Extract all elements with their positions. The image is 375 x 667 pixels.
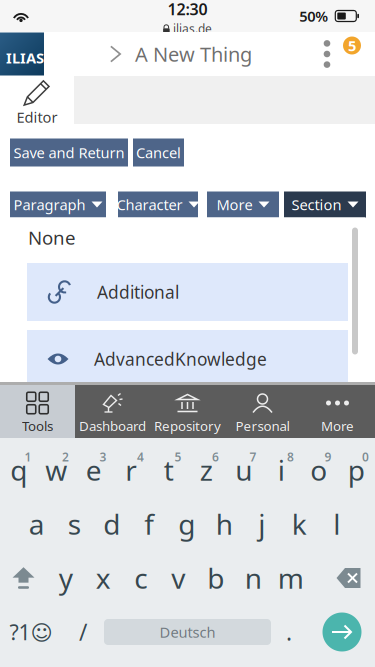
staticText: Section	[291, 195, 341, 214]
button[interactable]: Repository	[150, 385, 225, 438]
button[interactable]: v	[159, 551, 197, 605]
staticText: ilias.de	[173, 21, 212, 37]
staticText: /	[79, 617, 87, 647]
staticText: n	[245, 559, 262, 597]
button[interactable]: Save and Return	[10, 138, 128, 166]
button[interactable]: d	[93, 497, 130, 551]
button[interactable]: f	[130, 497, 168, 551]
staticText: 50%	[299, 6, 328, 26]
button[interactable]: .	[271, 605, 307, 659]
button[interactable]: Backspace	[323, 551, 375, 605]
staticText: Editor	[16, 107, 57, 127]
staticText: Character	[116, 195, 182, 214]
button[interactable]: /	[62, 605, 104, 659]
button[interactable]: j	[243, 497, 280, 551]
button[interactable]: More	[300, 385, 375, 438]
button[interactable]: Additional	[27, 263, 348, 321]
staticText: h	[216, 505, 233, 543]
staticText: 8	[287, 449, 294, 465]
staticText: A New Thing	[135, 41, 252, 67]
staticText: g	[178, 505, 195, 543]
button[interactable]: 5	[150, 443, 187, 497]
button[interactable]: 8	[262, 443, 300, 497]
button[interactable]: 5 notifications	[338, 32, 366, 76]
staticText: Additional	[97, 280, 179, 303]
staticText: Tools	[22, 417, 53, 435]
button[interactable]: Space	[104, 605, 271, 659]
staticText: w	[45, 451, 67, 489]
staticText: u	[235, 451, 252, 489]
button[interactable]: More	[207, 191, 279, 217]
staticText: l	[333, 505, 340, 543]
staticText: 9	[324, 449, 331, 465]
button[interactable]: Symbols and emoji	[0, 605, 62, 659]
button[interactable]: AdvancedKnowledge	[27, 330, 348, 388]
button[interactable]: k	[280, 497, 318, 551]
button[interactable]: 1	[0, 443, 37, 497]
button[interactable]: c	[122, 551, 159, 605]
button[interactable]: Shift	[0, 551, 47, 605]
button[interactable]: 6	[187, 443, 225, 497]
staticText: Cancel	[136, 143, 181, 162]
button[interactable]: 2	[37, 443, 75, 497]
button[interactable]: s	[55, 497, 93, 551]
button[interactable]: Character	[118, 191, 198, 217]
staticText: p	[348, 451, 365, 489]
button[interactable]: m	[272, 551, 309, 605]
staticText: m	[278, 559, 304, 597]
button[interactable]: 9	[300, 443, 337, 497]
staticText: y	[59, 559, 73, 597]
staticText: ?1☺	[9, 618, 52, 646]
button[interactable]: Cancel	[133, 138, 184, 166]
button[interactable]: Section	[284, 191, 366, 217]
staticText: Repository	[154, 417, 221, 435]
staticText: r	[125, 451, 137, 489]
button[interactable]: g	[168, 497, 205, 551]
staticText: q	[10, 451, 27, 489]
button[interactable]: b	[197, 551, 234, 605]
button[interactable]: ILIAS home	[0, 32, 44, 75]
staticText: 0	[362, 449, 369, 465]
button[interactable]: Dashboard	[75, 385, 150, 438]
button[interactable]: Personal	[225, 385, 300, 438]
staticText: d	[103, 505, 120, 543]
staticText: c	[134, 559, 147, 597]
button[interactable]: l	[318, 497, 355, 551]
staticText: v	[171, 559, 185, 597]
staticText: a	[29, 505, 45, 543]
staticText: 2	[62, 449, 69, 465]
button[interactable]: Editor	[0, 76, 74, 124]
staticText: More	[216, 195, 252, 214]
staticText: .	[286, 617, 292, 647]
staticText: t	[164, 451, 174, 489]
button[interactable]: Paragraph	[10, 191, 106, 217]
staticText: 5	[174, 449, 181, 465]
staticText: ILIAS	[6, 48, 44, 67]
staticText: z	[200, 451, 213, 489]
button[interactable]: 3	[75, 443, 112, 497]
button[interactable]: h	[205, 497, 243, 551]
staticText: 6	[212, 449, 219, 465]
button[interactable]: 4	[112, 443, 150, 497]
staticText: AdvancedKnowledge	[94, 347, 267, 370]
button[interactable]: y	[47, 551, 84, 605]
button[interactable]: x	[84, 551, 122, 605]
button[interactable]: a	[18, 497, 55, 551]
staticText: 5	[348, 36, 356, 55]
staticText: x	[96, 559, 111, 597]
staticText: 3	[99, 449, 106, 465]
button[interactable]: Enter	[315, 605, 369, 659]
staticText: j	[258, 505, 265, 543]
button[interactable]: More options	[316, 32, 338, 76]
staticText: More	[321, 417, 354, 435]
staticText: Personal	[235, 417, 289, 435]
button[interactable]: n	[234, 551, 272, 605]
staticText: 7	[249, 449, 256, 465]
staticText: k	[292, 505, 307, 543]
button[interactable]: 0	[337, 443, 375, 497]
staticText: 1	[24, 449, 31, 465]
button[interactable]: 7	[225, 443, 262, 497]
staticText: f	[144, 505, 154, 543]
button[interactable]: Tools	[0, 385, 75, 438]
staticText: None	[28, 225, 76, 250]
